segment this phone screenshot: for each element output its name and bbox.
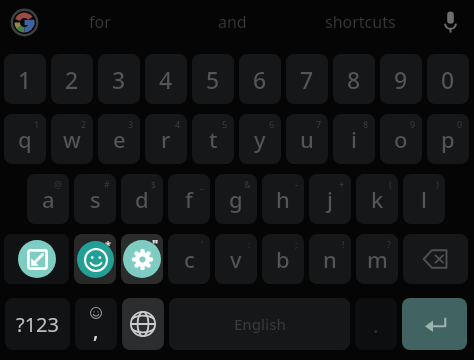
button[interactable]: k xyxy=(356,174,398,224)
button[interactable]: a xyxy=(27,174,69,224)
button[interactable]: Backspace xyxy=(403,234,468,284)
button[interactable]: d xyxy=(121,174,163,224)
button[interactable]: m xyxy=(356,234,398,284)
staticText: 6 xyxy=(269,118,275,130)
staticText: ?123 xyxy=(16,311,59,338)
button[interactable]: Google xyxy=(8,6,40,38)
staticText: x xyxy=(136,244,148,274)
button[interactable]: i xyxy=(333,114,375,164)
staticText: shortcuts xyxy=(325,11,396,33)
staticText: z xyxy=(90,244,101,274)
staticText: 0 xyxy=(441,64,455,95)
button[interactable]: Emoji xyxy=(74,234,116,284)
button[interactable]: Stickers xyxy=(4,234,69,284)
button[interactable]: s xyxy=(74,174,116,224)
button[interactable]: Voice input xyxy=(434,6,466,38)
staticText: 0 xyxy=(457,118,463,130)
button[interactable]: v xyxy=(215,234,257,284)
button[interactable]: 7 xyxy=(286,54,328,104)
staticText: 2 xyxy=(81,118,87,130)
button[interactable]: t xyxy=(192,114,234,164)
button[interactable]: Shift xyxy=(4,234,69,284)
staticText: j xyxy=(327,184,333,214)
staticText: ( xyxy=(389,178,392,190)
button[interactable]: shortcuts xyxy=(305,0,415,43)
staticText: n xyxy=(323,244,337,274)
button[interactable]: 8 xyxy=(333,54,375,104)
button[interactable]: l xyxy=(403,174,445,224)
staticText: - xyxy=(295,178,298,190)
button[interactable]: q xyxy=(4,114,46,164)
button[interactable]: and xyxy=(177,0,287,43)
staticText: u xyxy=(300,124,314,154)
button[interactable]: e xyxy=(98,114,140,164)
staticText: b xyxy=(276,244,290,274)
staticText: 7 xyxy=(300,64,314,95)
staticText: h xyxy=(276,184,290,214)
staticText: ? xyxy=(387,238,392,250)
button[interactable]: 5 xyxy=(192,54,234,104)
button[interactable]: Settings xyxy=(121,234,163,284)
staticText: ! xyxy=(342,238,345,250)
staticText: _ xyxy=(200,178,204,190)
staticText: l xyxy=(421,184,427,214)
staticText: e xyxy=(113,124,126,154)
button[interactable]: Comma xyxy=(75,298,117,350)
staticText: & xyxy=(244,178,251,190)
staticText: for xyxy=(89,11,111,33)
staticText: 6 xyxy=(253,64,267,95)
button[interactable]: c xyxy=(168,234,210,284)
staticText: i xyxy=(351,124,357,154)
staticText: f xyxy=(185,184,193,214)
staticText: 1 xyxy=(34,118,40,130)
button[interactable]: u xyxy=(286,114,328,164)
staticText: d xyxy=(135,184,149,214)
button[interactable]: 6 xyxy=(239,54,281,104)
button[interactable]: g xyxy=(215,174,257,224)
staticText: 4 xyxy=(175,118,181,130)
button[interactable]: English xyxy=(169,298,350,350)
button[interactable]: f xyxy=(168,174,210,224)
staticText: v xyxy=(230,244,242,274)
button[interactable]: p xyxy=(427,114,469,164)
button[interactable]: n xyxy=(309,234,351,284)
button[interactable]: o xyxy=(380,114,422,164)
button[interactable]: 2 xyxy=(51,54,93,104)
staticText: g xyxy=(229,184,243,214)
button[interactable]: 9 xyxy=(380,54,422,104)
staticText: @ xyxy=(54,178,63,190)
button[interactable]: j xyxy=(309,174,351,224)
staticText: w xyxy=(63,124,81,154)
staticText: . xyxy=(373,312,379,339)
staticText: t xyxy=(209,124,218,154)
button[interactable]: Change language xyxy=(122,298,164,350)
staticText: " xyxy=(153,238,157,250)
button[interactable]: 1 xyxy=(4,54,46,104)
button[interactable]: 3 xyxy=(98,54,140,104)
staticText: 5 xyxy=(222,118,228,130)
staticText: y xyxy=(254,124,266,154)
staticText: 9 xyxy=(394,64,408,95)
staticText: # xyxy=(104,178,110,190)
button[interactable]: w xyxy=(51,114,93,164)
button[interactable]: r xyxy=(145,114,187,164)
button[interactable]: Enter xyxy=(402,298,467,350)
button[interactable]: y xyxy=(239,114,281,164)
staticText: : xyxy=(248,238,251,250)
button[interactable]: 0 xyxy=(427,54,469,104)
button[interactable]: ?123 xyxy=(5,298,70,350)
button[interactable]: 4 xyxy=(145,54,187,104)
button[interactable]: x xyxy=(121,234,163,284)
button[interactable]: b xyxy=(262,234,304,284)
staticText: " xyxy=(152,235,159,253)
button[interactable]: for xyxy=(45,0,155,43)
staticText: 1 xyxy=(18,64,32,95)
staticText: 7 xyxy=(316,118,322,130)
staticText: 3 xyxy=(128,118,134,130)
button[interactable]: h xyxy=(262,174,304,224)
staticText: 4 xyxy=(159,64,173,95)
button[interactable]: z xyxy=(74,234,116,284)
staticText: , xyxy=(93,317,99,344)
staticText: 5 xyxy=(206,64,220,95)
